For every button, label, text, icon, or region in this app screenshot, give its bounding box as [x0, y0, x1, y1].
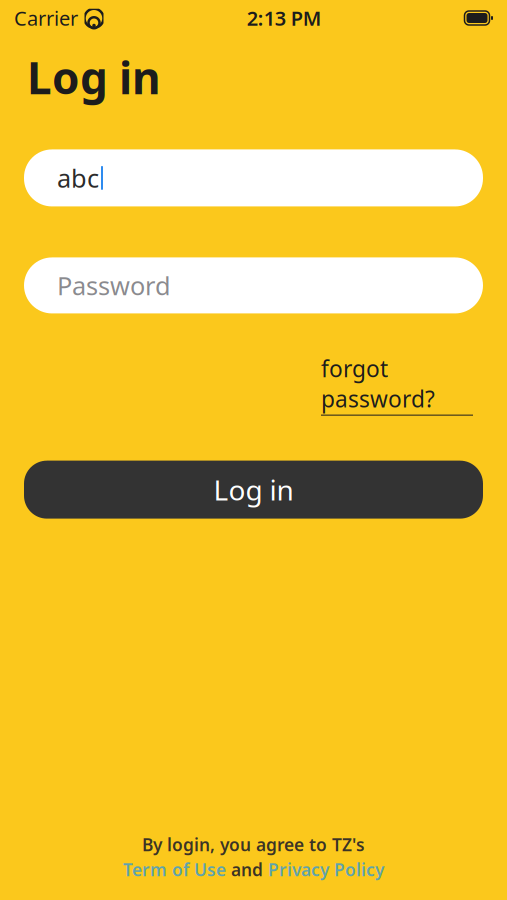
staticText: Log in: [213, 471, 293, 508]
staticText: and: [231, 858, 263, 881]
staticText: Password: [57, 269, 171, 302]
staticText: Privacy Policy: [268, 858, 384, 881]
staticText: By login, you agree to TZ's: [142, 833, 365, 856]
staticText: forgot password?: [321, 353, 435, 414]
button[interactable]: Term of Use: [123, 858, 226, 881]
staticText: Log in: [27, 48, 161, 106]
staticText: 2:13 PM: [247, 5, 322, 31]
button[interactable]: Log in: [24, 461, 483, 519]
button[interactable]: forgot password?: [321, 353, 473, 416]
button[interactable]: Privacy Policy: [268, 858, 384, 881]
staticText: Carrier: [14, 5, 78, 31]
staticText: abc: [57, 161, 99, 195]
staticText: Term of Use: [123, 858, 226, 881]
